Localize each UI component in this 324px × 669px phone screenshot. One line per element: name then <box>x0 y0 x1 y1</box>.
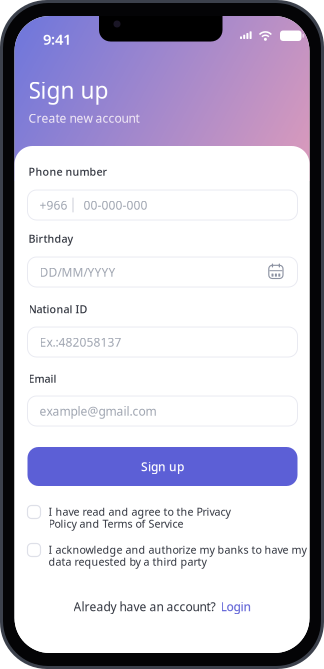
staticText: Email <box>28 371 56 386</box>
staticText: Sign up <box>28 75 108 105</box>
staticText: +966 <box>39 197 67 213</box>
staticText: Login <box>220 598 251 614</box>
staticText: DD/MM/YYYY <box>39 264 115 280</box>
staticText: Birthday <box>28 231 73 246</box>
staticText: Policy and Terms of Service <box>48 517 183 531</box>
staticText: Ex.:482058137 <box>39 334 121 350</box>
button[interactable]: Login <box>220 598 251 614</box>
button[interactable]: Sign up <box>27 447 297 486</box>
staticText: Already have an account? <box>73 598 215 614</box>
staticText: Create new account <box>28 110 139 126</box>
staticText: example@gmail.com <box>39 403 156 419</box>
button[interactable]: I have read and agree to the Privacy Pol… <box>27 505 297 529</box>
staticText: 9:41 <box>43 29 71 49</box>
staticText: I acknowledge and authorize my banks to … <box>48 542 306 557</box>
staticText: 00-000-000 <box>83 197 147 213</box>
staticText: National ID <box>28 302 87 316</box>
staticText: data requested by a third party <box>48 555 206 569</box>
staticText: I have read and agree to the Privacy <box>48 504 230 519</box>
staticText: Phone number <box>28 164 107 179</box>
button[interactable]: I acknowledge and authorize my banks to … <box>27 543 297 567</box>
staticText: Sign up <box>141 458 184 474</box>
